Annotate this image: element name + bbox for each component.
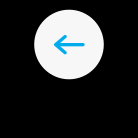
- button[interactable]: Back: [34, 10, 104, 79]
